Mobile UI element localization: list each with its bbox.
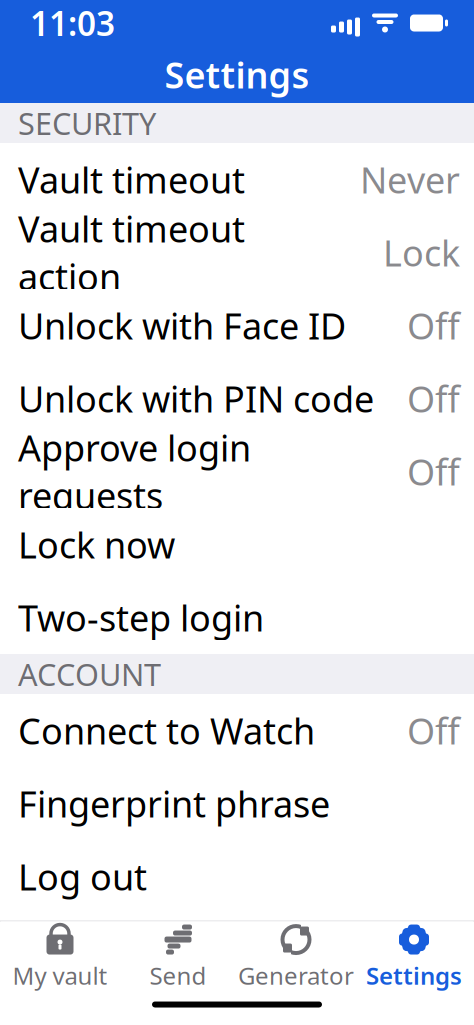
staticText: Vault timeout <box>18 156 245 203</box>
staticText: Off <box>407 375 460 422</box>
staticText: Two-step login <box>18 594 264 641</box>
button[interactable]: Send <box>119 921 237 993</box>
staticText: Log out <box>18 853 147 900</box>
button[interactable]: Unlock with PIN code <box>0 362 474 435</box>
staticText: Generator <box>238 960 354 991</box>
button[interactable]: Connect to Watch <box>0 694 474 767</box>
button[interactable]: Vault timeout <box>0 143 474 216</box>
button[interactable]: Generator <box>237 921 355 993</box>
button[interactable]: Lock now <box>0 508 474 581</box>
staticText: Settings <box>366 960 462 991</box>
staticText: Fingerprint phrase <box>18 780 330 827</box>
staticText: Never <box>360 156 460 203</box>
staticText: Vault timeout action <box>18 205 245 300</box>
staticText: Connect to Watch <box>18 707 315 754</box>
button[interactable]: Two-step login <box>0 581 474 654</box>
button[interactable]: Log out <box>0 840 474 913</box>
staticText: SECURITY <box>18 103 156 143</box>
staticText: Send <box>149 960 206 991</box>
staticText: ACCOUNT <box>18 654 161 694</box>
button[interactable]: Unlock with Face ID <box>0 289 474 362</box>
staticText: Off <box>407 707 460 754</box>
button[interactable]: Vault timeout action <box>0 216 474 289</box>
staticText: Unlock with Face ID <box>18 302 346 349</box>
staticText: Settings <box>164 51 309 98</box>
staticText: 11:03 <box>30 1 115 45</box>
button[interactable]: My vault <box>1 921 119 993</box>
staticText: Approve login requests <box>18 424 251 519</box>
staticText: Off <box>407 302 460 349</box>
staticText: Lock now <box>18 521 175 568</box>
button[interactable]: Fingerprint phrase <box>0 767 474 840</box>
button[interactable]: Settings <box>355 921 473 993</box>
staticText: My vault <box>12 960 107 991</box>
staticText: Unlock with PIN code <box>18 375 374 422</box>
button[interactable]: Approve login requests <box>0 435 474 508</box>
staticText: Lock <box>383 229 460 276</box>
staticText: Off <box>407 448 460 495</box>
